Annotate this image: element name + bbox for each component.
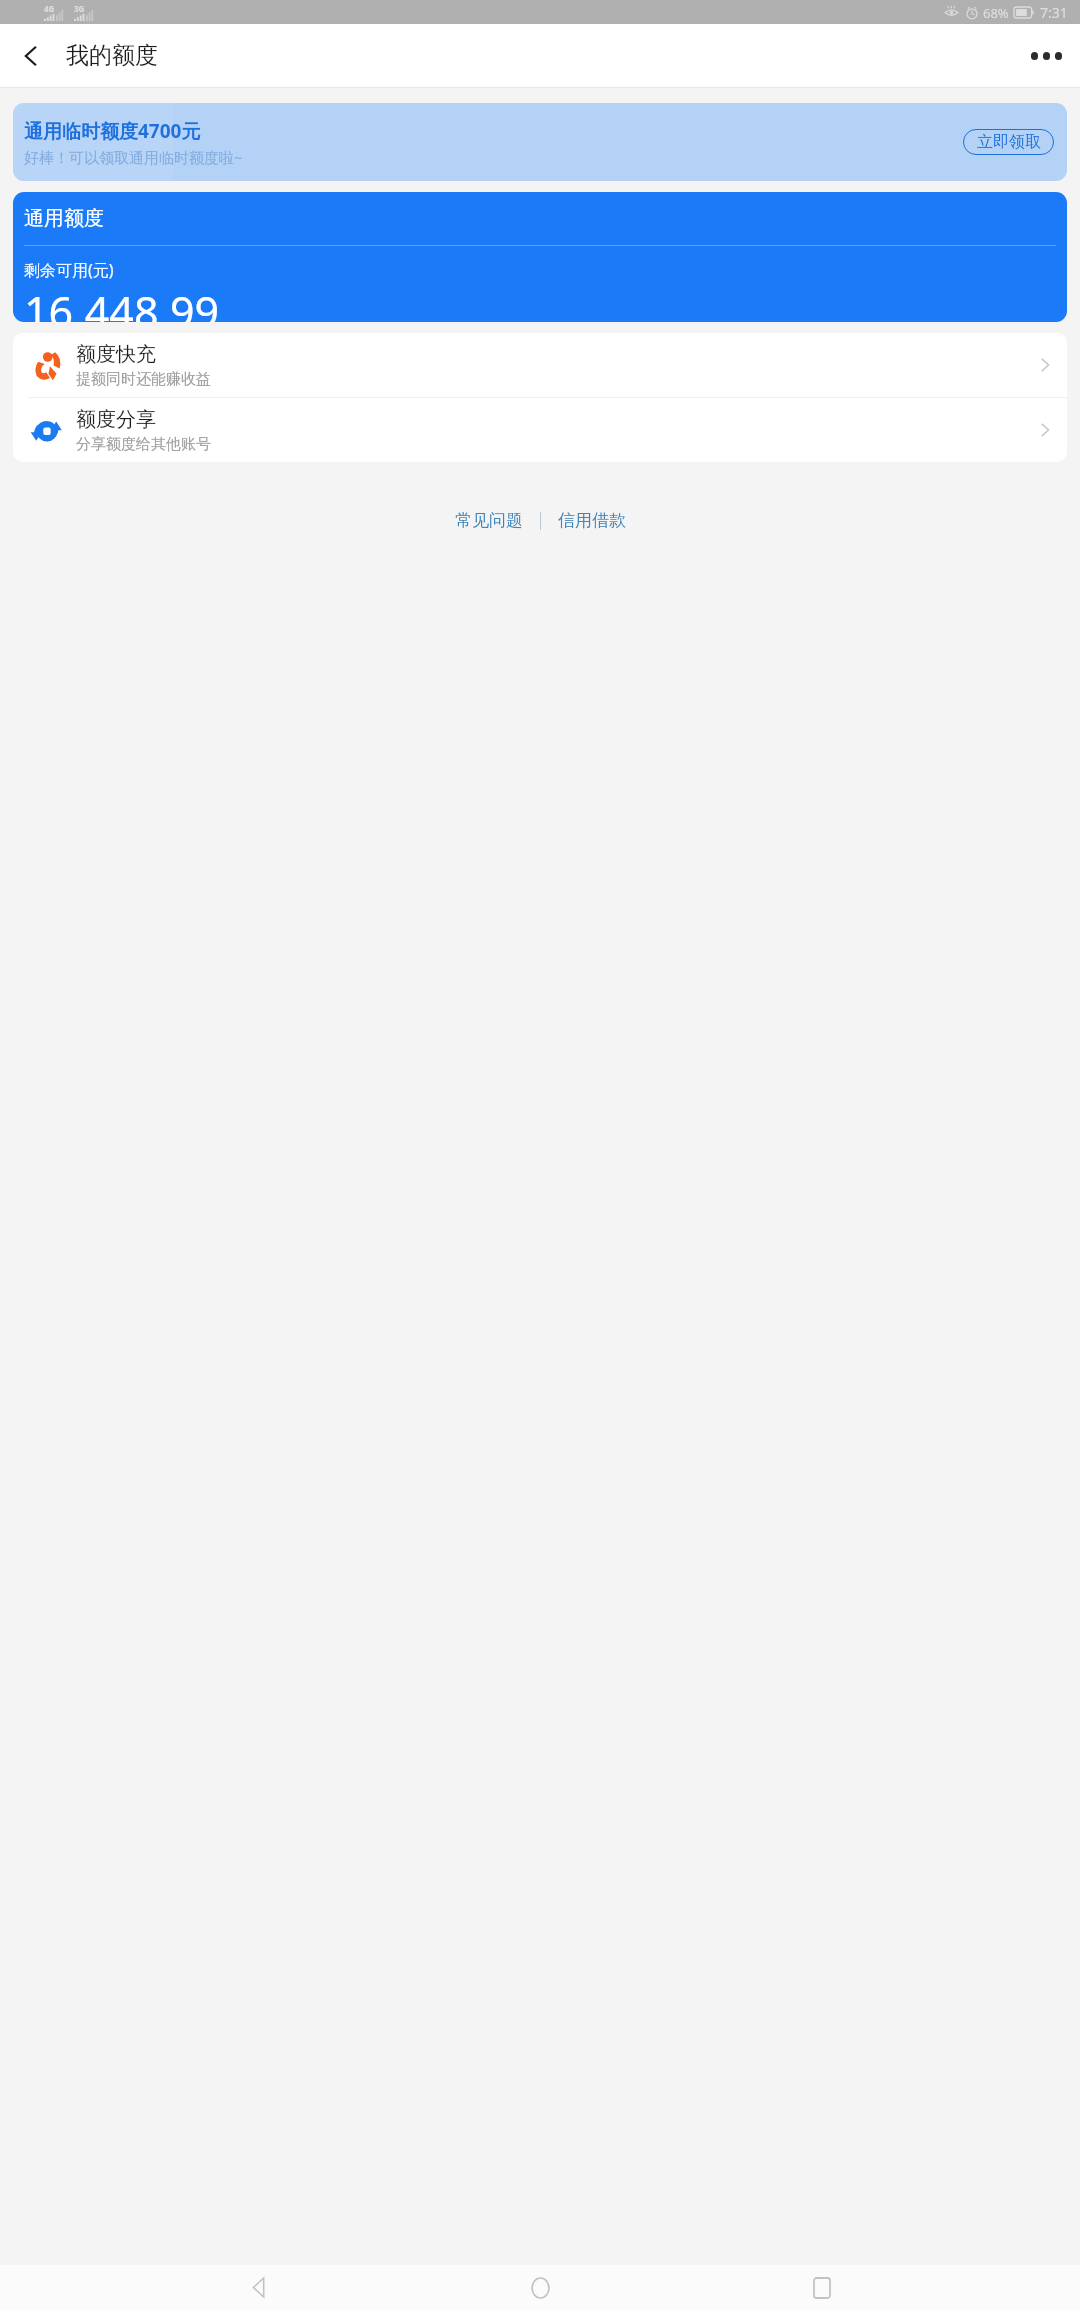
button[interactable]: 信用借款 bbox=[550, 506, 634, 535]
button[interactable]: 立即领取 bbox=[963, 129, 1054, 155]
staticText: 常见问题 bbox=[455, 510, 523, 531]
button[interactable]: More options bbox=[1022, 32, 1070, 80]
staticText: 立即领取 bbox=[977, 132, 1041, 152]
staticText: 通用临时额度4700元 bbox=[24, 118, 201, 144]
staticText: 提额同时还能赚收益 bbox=[76, 370, 211, 389]
staticText: 额度快充 bbox=[76, 342, 156, 367]
staticText: 4G bbox=[44, 3, 55, 14]
staticText: 通用额度 bbox=[24, 206, 104, 231]
button[interactable]: Back bbox=[8, 32, 56, 80]
staticText: 信用借款 bbox=[558, 510, 626, 531]
button[interactable]: 常见问题 bbox=[447, 506, 531, 535]
button[interactable]: 通用额度 bbox=[13, 192, 1067, 322]
staticText: 16,448.99 bbox=[24, 282, 220, 322]
button[interactable]: 通用临时额度4700元 bbox=[13, 103, 1067, 181]
button[interactable]: Home bbox=[517, 2265, 563, 2310]
staticText: 剩余可用(元) bbox=[24, 259, 114, 281]
staticText: 3G bbox=[74, 3, 85, 14]
staticText: 我的额度 bbox=[66, 41, 158, 70]
button[interactable]: 额度快充 bbox=[13, 333, 1067, 397]
staticText: 分享额度给其他账号 bbox=[76, 435, 211, 454]
staticText: 68% bbox=[983, 4, 1009, 22]
button[interactable]: Recent apps bbox=[799, 2265, 845, 2310]
staticText: 额度分享 bbox=[76, 407, 156, 432]
button[interactable]: Back bbox=[236, 2265, 282, 2310]
staticText: 7:31 bbox=[1040, 3, 1068, 22]
staticText: 好棒！可以领取通用临时额度啦~ bbox=[24, 147, 243, 167]
button[interactable]: 额度分享 bbox=[13, 398, 1067, 462]
